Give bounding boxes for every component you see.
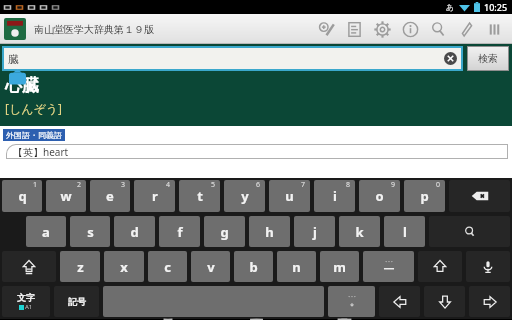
staticText: e bbox=[106, 187, 114, 205]
button[interactable]: w bbox=[46, 180, 86, 212]
button[interactable]: Backspace bbox=[449, 180, 510, 212]
staticText: u bbox=[285, 187, 294, 205]
button[interactable]: Punctuation bbox=[328, 286, 375, 317]
button[interactable]: Info bbox=[396, 14, 424, 44]
button[interactable]: Recent apps bbox=[306, 319, 382, 320]
staticText: 心臓 bbox=[5, 75, 39, 96]
staticText: 9 bbox=[391, 180, 396, 190]
staticText: [しんぞう] bbox=[5, 100, 63, 116]
staticText: w bbox=[60, 187, 72, 205]
button[interactable]: e bbox=[90, 180, 130, 212]
staticText: 6 bbox=[256, 180, 261, 190]
staticText: z bbox=[77, 258, 84, 276]
staticText: 臓 bbox=[8, 52, 19, 66]
staticText: g bbox=[220, 223, 229, 241]
staticText: f bbox=[177, 223, 183, 241]
staticText: h bbox=[265, 223, 274, 241]
button[interactable]: Back bbox=[130, 319, 206, 320]
button[interactable]: g bbox=[204, 216, 245, 247]
button[interactable]: z bbox=[60, 251, 100, 282]
staticText: t bbox=[197, 187, 203, 205]
button[interactable]: Cursor left bbox=[379, 286, 420, 317]
button[interactable]: App icon bbox=[4, 18, 26, 40]
staticText: 5 bbox=[211, 180, 216, 190]
button[interactable]: b bbox=[234, 251, 273, 282]
button[interactable]: Search bbox=[429, 216, 510, 247]
button[interactable]: u bbox=[269, 180, 310, 212]
button[interactable]: d bbox=[114, 216, 155, 247]
staticText: 南山堂医学大辞典第１９版 bbox=[34, 23, 154, 36]
staticText: v bbox=[207, 258, 215, 276]
button[interactable]: 文字 bbox=[2, 286, 50, 317]
staticText: 外国語・同義語 bbox=[6, 130, 62, 140]
staticText: 記号 bbox=[68, 296, 86, 307]
staticText: 8 bbox=[346, 180, 351, 190]
staticText: x bbox=[120, 258, 128, 276]
button[interactable]: j bbox=[294, 216, 335, 247]
staticText: p bbox=[420, 187, 429, 205]
button[interactable]: Cursor right bbox=[469, 286, 510, 317]
staticText: 0 bbox=[436, 180, 441, 190]
button[interactable]: o bbox=[359, 180, 400, 212]
button[interactable]: Cursor down bbox=[424, 286, 465, 317]
button[interactable]: 臓 bbox=[2, 46, 463, 71]
staticText: 検索 bbox=[478, 52, 498, 65]
button[interactable]: s bbox=[70, 216, 110, 247]
button[interactable]: x bbox=[104, 251, 144, 282]
button[interactable]: 外国語・同義語 bbox=[6, 130, 62, 140]
button[interactable]: h bbox=[249, 216, 290, 247]
button[interactable]: Voice input bbox=[466, 251, 510, 282]
staticText: m bbox=[333, 258, 346, 276]
staticText: q bbox=[18, 187, 27, 205]
button[interactable]: q bbox=[2, 180, 42, 212]
button[interactable]: Settings bbox=[368, 14, 396, 44]
staticText: r bbox=[152, 187, 158, 205]
staticText: l bbox=[403, 223, 407, 241]
button[interactable]: m bbox=[320, 251, 359, 282]
button[interactable]: c bbox=[148, 251, 187, 282]
staticText: o bbox=[375, 187, 384, 205]
staticText: 7 bbox=[301, 180, 306, 190]
button[interactable]: f bbox=[159, 216, 200, 247]
staticText: i bbox=[333, 187, 337, 205]
button[interactable]: 検索 bbox=[467, 46, 509, 71]
button[interactable]: t bbox=[179, 180, 220, 212]
button[interactable]: Add note bbox=[312, 14, 340, 44]
button[interactable]: Marker bbox=[452, 14, 480, 44]
button[interactable]: n bbox=[277, 251, 316, 282]
button[interactable]: a bbox=[26, 216, 66, 247]
staticText: 10:25 bbox=[484, 1, 508, 13]
button[interactable]: Search bbox=[424, 14, 452, 44]
button[interactable]: Contents bbox=[340, 14, 368, 44]
button[interactable]: r bbox=[134, 180, 175, 212]
staticText: 4 bbox=[166, 180, 171, 190]
staticText: b bbox=[249, 258, 258, 276]
staticText: 3 bbox=[121, 180, 126, 190]
button[interactable]: Shift bbox=[418, 251, 462, 282]
staticText: あ bbox=[446, 2, 455, 12]
staticText: d bbox=[130, 223, 139, 241]
staticText: A1 bbox=[25, 303, 33, 311]
staticText: 【英】heart bbox=[13, 145, 69, 159]
staticText: y bbox=[241, 187, 249, 205]
staticText: a bbox=[42, 223, 50, 241]
staticText: 1 bbox=[33, 180, 38, 190]
button[interactable]: l bbox=[384, 216, 425, 247]
button[interactable]: i bbox=[314, 180, 355, 212]
button[interactable]: Home bbox=[218, 319, 294, 320]
staticText: j bbox=[313, 223, 317, 241]
button[interactable]: y bbox=[224, 180, 265, 212]
button[interactable]: Clear text bbox=[444, 52, 457, 65]
staticText: k bbox=[355, 223, 364, 241]
staticText: n bbox=[292, 258, 301, 276]
button[interactable]: Dash bbox=[363, 251, 414, 282]
button[interactable]: 記号 bbox=[54, 286, 99, 317]
button[interactable]: k bbox=[339, 216, 380, 247]
button[interactable]: Caps lock bbox=[2, 251, 56, 282]
staticText: 文字 bbox=[17, 292, 35, 303]
button[interactable]: p bbox=[404, 180, 445, 212]
button[interactable]: Index bbox=[480, 14, 508, 44]
button[interactable]: v bbox=[191, 251, 230, 282]
staticText: s bbox=[87, 223, 94, 241]
